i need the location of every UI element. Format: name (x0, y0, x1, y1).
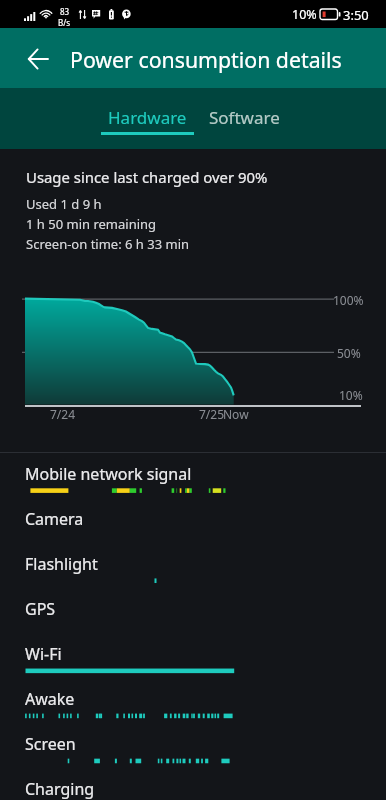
staticText: Usage since last charged over 90% (26, 167, 268, 187)
staticText: 10% (292, 6, 317, 23)
button[interactable]: Flashlight (0, 541, 386, 586)
staticText: Now (223, 406, 249, 422)
staticText: 50% (337, 345, 361, 361)
staticText: 1 h 50 min remaining (26, 215, 157, 233)
button[interactable]: GPS (0, 586, 386, 631)
staticText: Power consumption details (70, 45, 342, 74)
button[interactable]: Mobile network signal (0, 451, 386, 496)
staticText: Screen-on time: 6 h 33 min (26, 235, 190, 253)
button[interactable]: Charging (0, 766, 386, 800)
button[interactable]: Software (196, 88, 292, 149)
staticText: Hardware (108, 106, 187, 129)
staticText: Mobile network signal (25, 463, 192, 485)
staticText: Wi-Fi (25, 643, 62, 665)
staticText: 7/25 (199, 406, 225, 422)
button[interactable]: Hardware (99, 88, 195, 149)
button[interactable]: Awake (0, 676, 386, 721)
button[interactable]: Screen (0, 721, 386, 766)
staticText: GPS (25, 598, 56, 620)
staticText: Screen (25, 733, 76, 755)
staticText: 100% (333, 292, 364, 308)
staticText: Charging (25, 778, 95, 800)
staticText: Awake (25, 688, 75, 710)
button[interactable]: Back (10, 28, 66, 88)
button[interactable]: Camera (0, 496, 386, 541)
staticText: Flashlight (25, 553, 98, 575)
staticText: B/s (58, 17, 71, 28)
staticText: Software (209, 106, 280, 129)
staticText: 83 (60, 6, 70, 17)
staticText: Used 1 d 9 h (26, 195, 102, 213)
staticText: Camera (25, 508, 84, 530)
staticText: 10% (339, 387, 363, 403)
staticText: 7/24 (50, 406, 76, 422)
button[interactable]: Wi-Fi (0, 631, 386, 676)
staticText: 3:50 (343, 6, 369, 24)
